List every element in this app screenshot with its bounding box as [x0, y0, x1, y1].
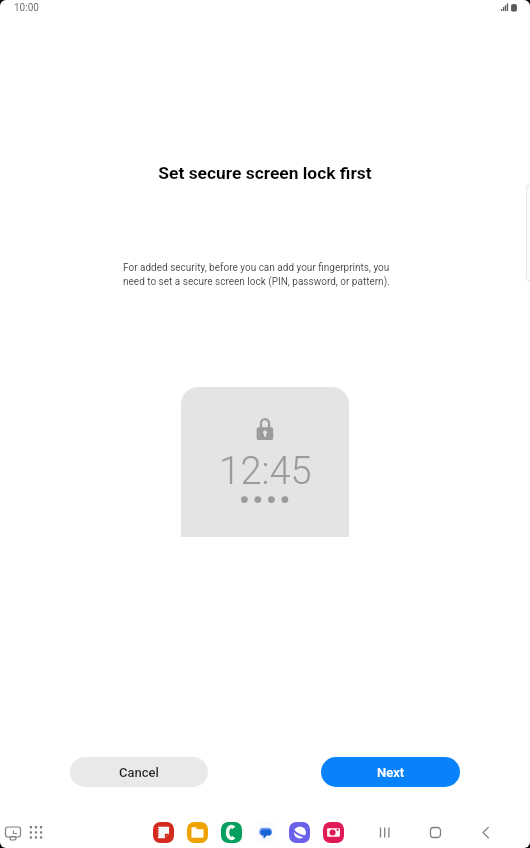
button[interactable]: Back [476, 823, 495, 842]
staticText: For added security, before you can add y… [123, 262, 395, 288]
staticText: Cancel [119, 765, 159, 780]
button[interactable]: Cancel [70, 757, 208, 787]
button[interactable]: Camera [323, 822, 344, 843]
button[interactable]: Next [321, 757, 460, 787]
staticText: 10:00 [14, 2, 39, 14]
button[interactable]: Recents [376, 823, 395, 842]
staticText: Set secure screen lock first [158, 163, 372, 183]
button[interactable]: My Files [187, 822, 208, 843]
staticText: Next [377, 765, 405, 780]
button[interactable]: Show desktop [2, 822, 24, 844]
button[interactable]: Internet [289, 822, 310, 843]
button[interactable]: Samsung Notes [153, 822, 174, 843]
staticText: 12:45 [219, 449, 312, 494]
button[interactable]: Apps [26, 822, 48, 844]
button[interactable]: Phone [221, 822, 242, 843]
button[interactable]: Home [426, 823, 445, 842]
button[interactable]: Messages [255, 822, 276, 843]
